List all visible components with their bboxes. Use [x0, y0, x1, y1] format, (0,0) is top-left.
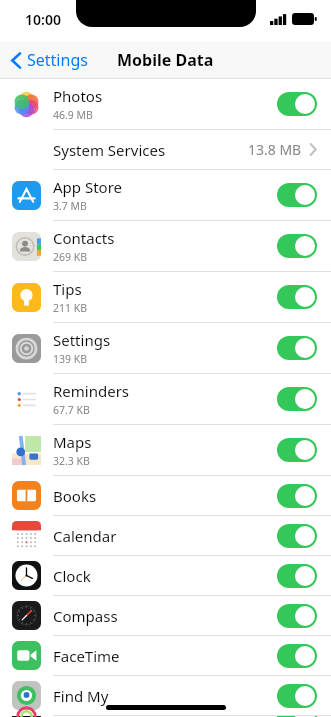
button[interactable]: Toggle [277, 183, 317, 207]
staticText: FaceTime [53, 646, 120, 666]
button[interactable]: Toggle [277, 564, 317, 588]
button[interactable]: Tips [0, 272, 331, 322]
staticText: Compass [53, 606, 118, 626]
button[interactable]: Toggle [277, 387, 317, 411]
button[interactable]: Find My [0, 676, 331, 715]
button[interactable]: Toggle [277, 336, 317, 360]
button[interactable]: Reminders [0, 374, 331, 424]
button[interactable]: System Services [0, 130, 331, 169]
staticText: Settings [53, 330, 111, 350]
button[interactable]: Toggle [277, 234, 317, 258]
staticText: 13.8 MB [248, 140, 302, 159]
staticText: 139 KB [53, 352, 88, 366]
staticText: Books [53, 486, 97, 506]
button[interactable]: FaceTime [0, 636, 331, 675]
button[interactable]: Settings [0, 323, 331, 373]
staticText: Contacts [53, 228, 115, 248]
button[interactable]: Fitness [0, 716, 331, 717]
button[interactable]: Clock [0, 556, 331, 595]
button[interactable]: Contacts [0, 221, 331, 271]
staticText: 3.7 MB [53, 199, 87, 213]
button[interactable]: Toggle [277, 644, 317, 668]
button[interactable]: Settings [8, 45, 91, 75]
staticText: 46.9 MB [53, 108, 93, 122]
button[interactable]: Toggle [277, 285, 317, 309]
staticText: App Store [53, 177, 123, 197]
button[interactable]: App Store [0, 170, 331, 220]
button[interactable]: Books [0, 476, 331, 515]
staticText: 67.7 KB [53, 403, 90, 417]
button[interactable]: Toggle [277, 524, 317, 548]
button[interactable]: Compass [0, 596, 331, 635]
button[interactable]: Calendar [0, 516, 331, 555]
button[interactable]: Toggle [277, 604, 317, 628]
other: More [309, 143, 317, 156]
button[interactable]: Photos [0, 79, 331, 129]
staticText: Mobile Data [117, 49, 214, 71]
button[interactable]: Toggle [277, 92, 317, 116]
staticText: Maps [53, 432, 92, 452]
staticText: Tips [53, 279, 82, 299]
staticText: Settings [27, 49, 88, 71]
staticText: Find My [53, 686, 109, 706]
button[interactable]: Toggle [277, 716, 317, 717]
staticText: 32.3 KB [53, 454, 90, 468]
button[interactable]: Toggle [277, 484, 317, 508]
staticText: 10:00 [25, 10, 61, 29]
staticText: 211 KB [53, 301, 88, 315]
staticText: Clock [53, 566, 91, 586]
staticText: Photos [53, 86, 103, 106]
button[interactable]: Toggle [277, 684, 317, 708]
button[interactable]: Toggle [277, 438, 317, 462]
button[interactable]: Maps [0, 425, 331, 475]
staticText: System Services [53, 140, 166, 160]
staticText: 269 KB [53, 250, 88, 264]
staticText: Reminders [53, 381, 130, 401]
staticText: Calendar [53, 526, 117, 546]
